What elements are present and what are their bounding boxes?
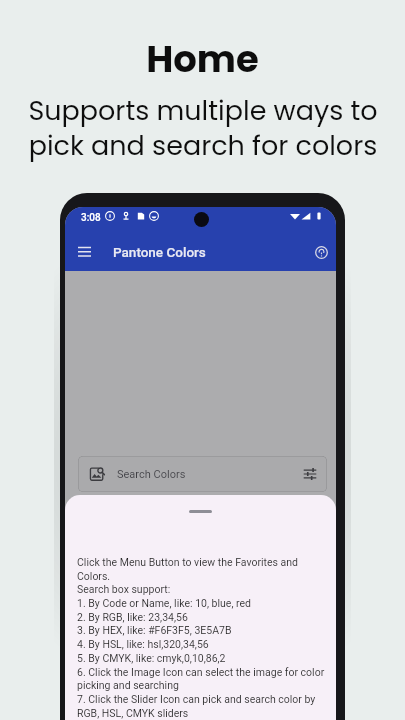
staticText: Click the Menu Button to view the Favori… [77, 556, 299, 568]
staticText: 2. By RGB, like: 23,34,56 [77, 611, 188, 623]
button[interactable]: Open navigation menu [73, 241, 95, 263]
staticText: 5. By CMYK, like: cmyk,0,10,86,2 [77, 652, 226, 664]
button[interactable]: Help [310, 241, 332, 263]
staticText: picking and searching [77, 679, 179, 691]
staticText: Pantone Colors [113, 244, 206, 260]
staticText: Search box support: [77, 583, 171, 595]
staticText: RGB, HSL, CMYK sliders [77, 707, 189, 719]
staticText: 7. Click the Slider Icon can pick and se… [77, 693, 316, 705]
staticText: 6. Click the Image Icon can select the i… [77, 666, 325, 678]
staticText: 1. By Code or Name, like: 10, blue, red [77, 597, 252, 609]
staticText: 3. By HEX, like: #F6F3F5, 3E5A7B [77, 624, 232, 636]
staticText: Home [146, 33, 259, 85]
button[interactable]: Pick color from image [78, 456, 327, 492]
staticText: 3:08 [81, 212, 101, 224]
staticText: Supports multiple ways to pick and searc… [28, 92, 378, 165]
staticText: Search Colors [117, 468, 186, 481]
staticText: 4. By HSL, like: hsl,320,34,56 [77, 638, 209, 650]
button[interactable]: Color sliders [303, 467, 317, 481]
button[interactable]: Pick color from image [89, 466, 105, 482]
staticText: Colors. [77, 570, 111, 582]
